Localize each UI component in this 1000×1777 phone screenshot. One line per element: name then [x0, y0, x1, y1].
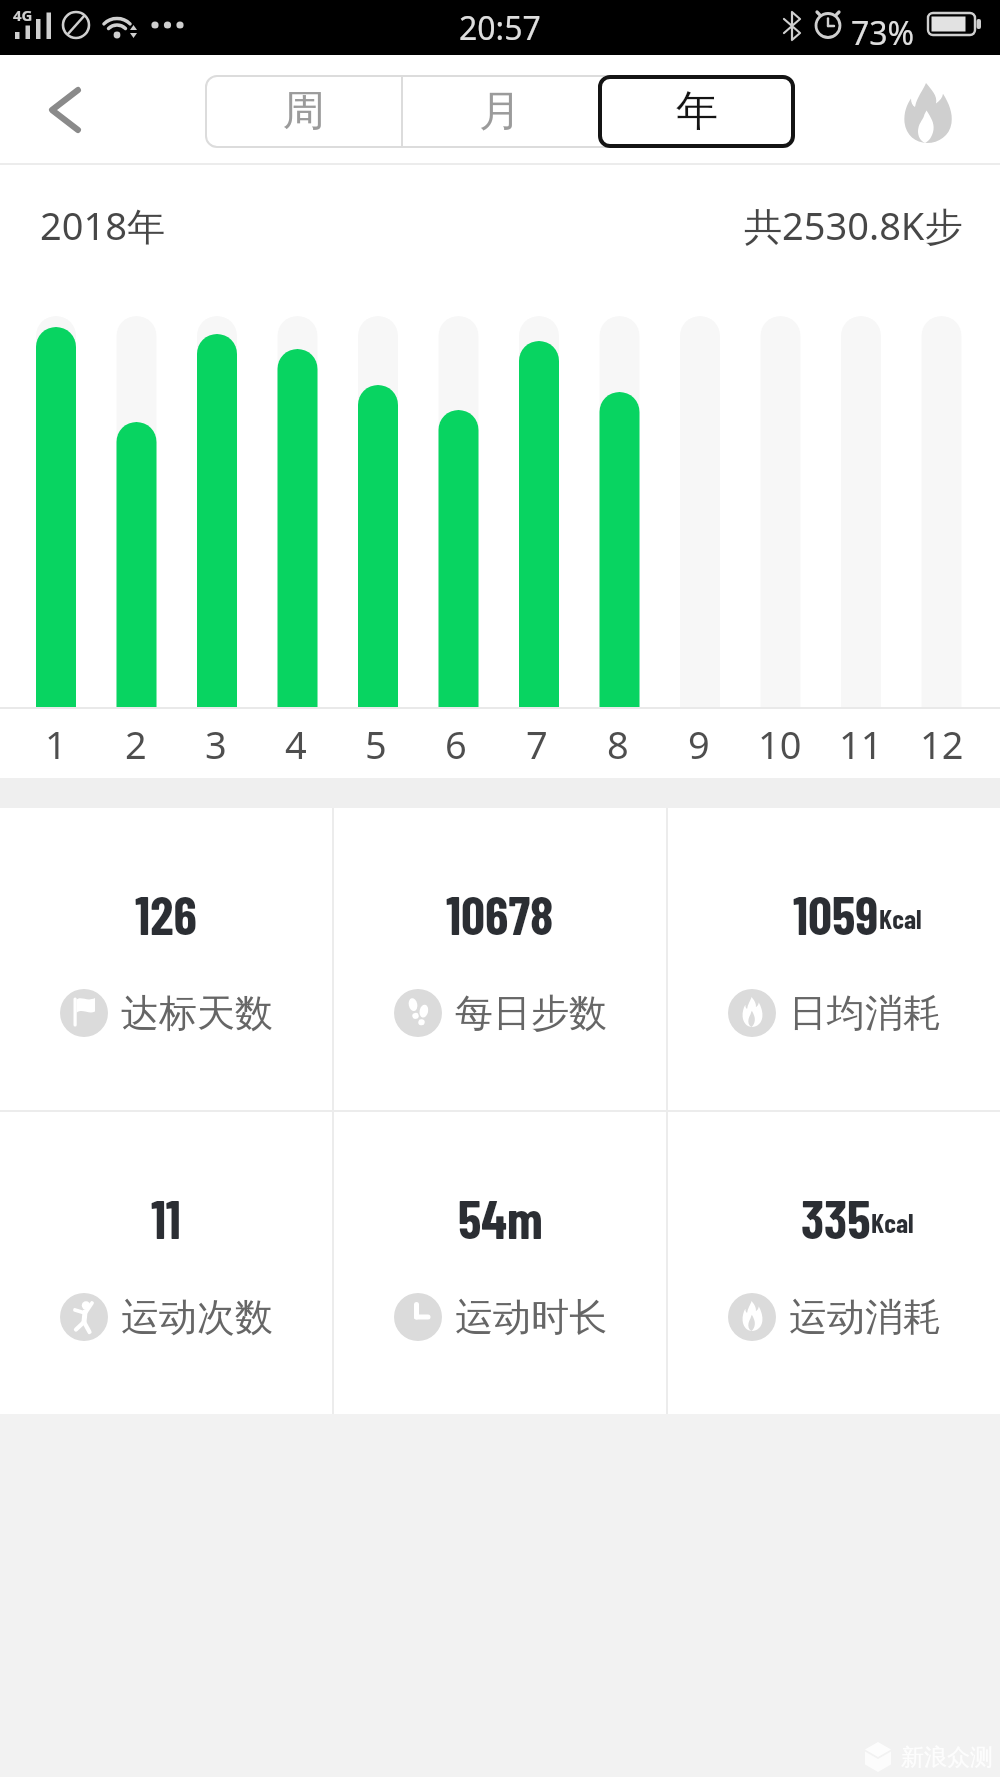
staticText: 2018年 — [40, 199, 165, 251]
staticText: 20:57 — [459, 6, 541, 50]
staticText: 11 — [839, 718, 883, 770]
staticText: 9 — [688, 718, 710, 770]
staticText: 运动消耗 — [789, 1293, 941, 1341]
staticText: 日均消耗 — [789, 989, 941, 1037]
staticText: 3 — [205, 718, 227, 770]
staticText: 8 — [607, 718, 629, 770]
button[interactable] — [888, 73, 968, 153]
staticText: 4G — [13, 5, 33, 25]
staticText: 1059 — [793, 882, 879, 942]
staticText: 11 — [151, 1186, 181, 1246]
staticText: 4 — [285, 718, 307, 770]
staticText: 月 — [479, 85, 521, 138]
staticText: Kcal — [879, 902, 922, 934]
staticText: 每日步数 — [455, 989, 607, 1037]
button[interactable]: 月 — [402, 75, 598, 148]
staticText: 周 — [283, 85, 325, 138]
staticText: 54m — [458, 1186, 543, 1246]
staticText: 73% — [851, 11, 915, 55]
staticText: 126 — [135, 882, 197, 942]
staticText: 达标天数 — [121, 989, 273, 1037]
staticText: 7 — [526, 718, 548, 770]
staticText: Kcal — [871, 1206, 914, 1238]
staticText: 10 — [758, 718, 802, 770]
staticText: 年 — [676, 85, 718, 138]
staticText: 12 — [920, 718, 964, 770]
staticText: 1 — [45, 718, 67, 770]
staticText: 335 — [801, 1186, 871, 1246]
staticText: 10678 — [446, 882, 554, 942]
button[interactable] — [30, 70, 100, 150]
staticText: 新浪众测 — [901, 1743, 993, 1772]
staticText: 运动次数 — [121, 1293, 273, 1341]
staticText: 6 — [445, 718, 467, 770]
staticText: 5 — [365, 718, 387, 770]
button[interactable]: 周 — [205, 75, 402, 148]
staticText: 共2530.8K步 — [744, 199, 963, 251]
staticText: 运动时长 — [455, 1293, 607, 1341]
staticText: 2 — [125, 718, 147, 770]
button[interactable]: 年 — [598, 75, 795, 148]
